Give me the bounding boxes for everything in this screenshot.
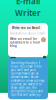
staticText: Writer [15,7,41,18]
staticText: E-mail [16,0,40,6]
staticText: Write an email for subscribers to a food… [10,37,40,48]
staticText: Write me an Email [12,26,40,30]
staticText: Greetings foodies, I hope this email fin… [11,61,44,96]
staticText: Ask anything about emails [10,32,45,35]
